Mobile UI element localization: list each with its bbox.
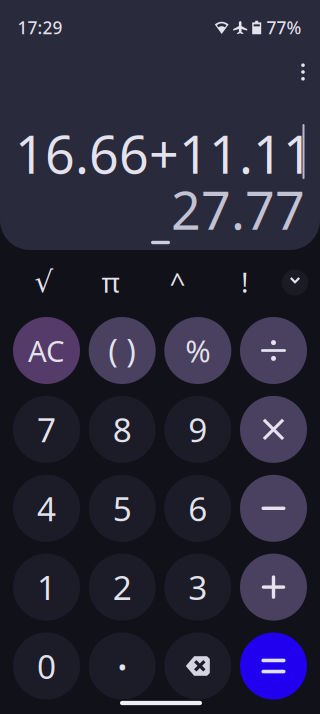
button[interactable]: Plus (240, 554, 307, 621)
button[interactable]: 2 (89, 554, 156, 621)
staticText: 17:29 (17, 16, 62, 39)
button[interactable]: More options (286, 55, 320, 89)
button[interactable]: ( ) (89, 317, 156, 384)
button[interactable]: Multiply (240, 396, 307, 463)
button[interactable]: Show more functions (282, 269, 308, 295)
button[interactable]: 9 (164, 396, 231, 463)
button[interactable]: Equals (240, 632, 307, 699)
button[interactable]: 3 (164, 554, 231, 621)
staticText: 16.66+11.11 (15, 119, 313, 188)
staticText: 5 (113, 486, 132, 530)
staticText: 3 (188, 565, 207, 609)
staticText: 1 (37, 565, 56, 609)
button[interactable]: · (89, 632, 156, 699)
staticText: ! (241, 263, 249, 301)
staticText: ( ) (108, 329, 136, 372)
staticText: 8 (113, 407, 132, 452)
staticText: 6 (188, 486, 207, 530)
staticText: · (116, 636, 128, 696)
button[interactable]: Minus (240, 475, 307, 542)
button[interactable]: Divide (240, 317, 307, 384)
button[interactable]: 1 (13, 554, 80, 621)
staticText: √ (34, 265, 53, 299)
button[interactable]: 4 (13, 475, 80, 542)
button[interactable]: ^ (150, 260, 206, 304)
button[interactable]: 0 (13, 632, 80, 699)
staticText: 77% (266, 16, 301, 39)
staticText: 27.77 (171, 175, 305, 244)
button[interactable]: ! (217, 260, 273, 304)
button[interactable]: % (164, 317, 231, 384)
staticText: 0 (37, 644, 56, 688)
button[interactable]: π (83, 260, 139, 304)
button[interactable]: 7 (13, 396, 80, 463)
button[interactable]: √ (16, 260, 72, 304)
staticText: % (185, 330, 210, 371)
button[interactable]: 6 (164, 475, 231, 542)
staticText: ^ (170, 263, 186, 301)
button[interactable]: Backspace (164, 632, 231, 699)
staticText: 7 (37, 407, 56, 452)
staticText: 9 (188, 407, 207, 452)
button[interactable]: 8 (89, 396, 156, 463)
staticText: π (102, 263, 120, 301)
staticText: AC (28, 331, 65, 370)
button[interactable]: 5 (89, 475, 156, 542)
staticText: 4 (37, 486, 56, 530)
staticText: 2 (113, 565, 132, 609)
button[interactable]: AC (13, 317, 80, 384)
